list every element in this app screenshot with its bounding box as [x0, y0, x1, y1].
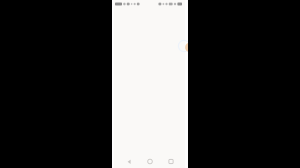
button[interactable]: Home [139, 151, 160, 168]
button[interactable]: Back [118, 151, 139, 168]
button[interactable]: Recents [160, 151, 181, 168]
